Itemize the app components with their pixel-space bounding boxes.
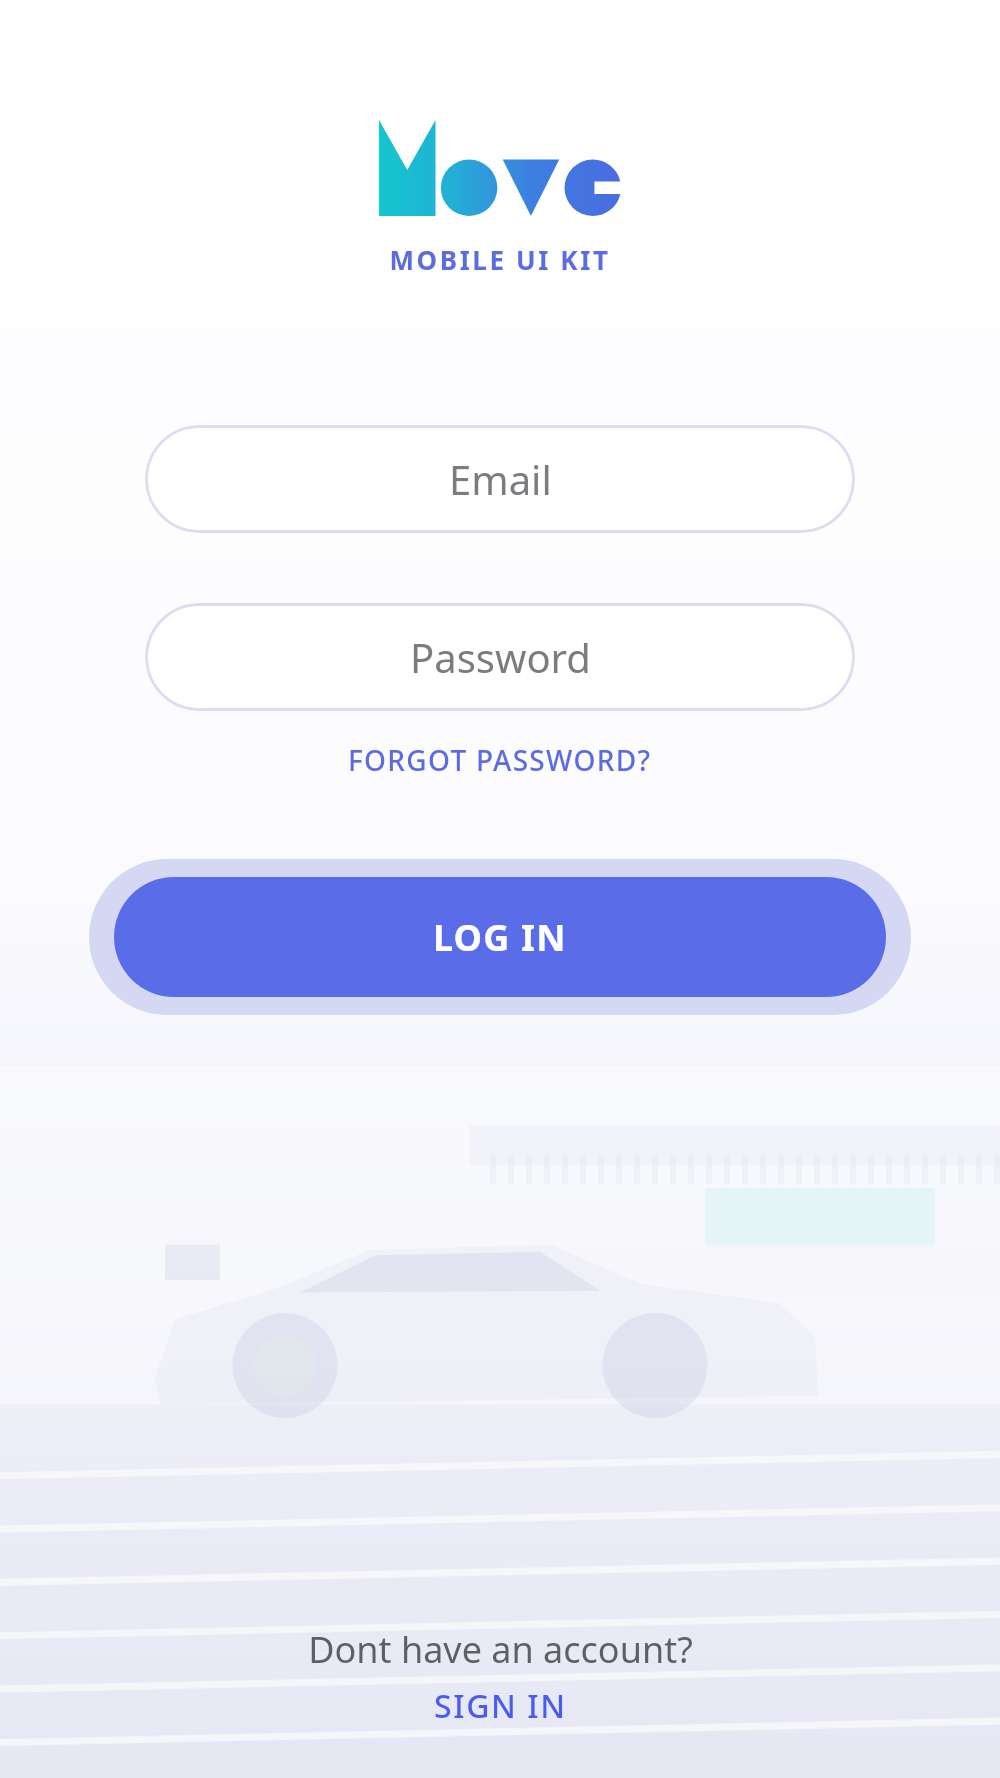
- staticText: Password: [410, 630, 591, 684]
- button[interactable]: SIGN IN: [420, 1680, 581, 1732]
- staticText: SIGN IN: [434, 1684, 567, 1728]
- staticText: Dont have an account?: [308, 1625, 693, 1674]
- button[interactable]: FORGOT PASSWORD?: [336, 735, 664, 785]
- staticText: MOBILE UI KIT: [389, 242, 611, 277]
- staticText: FORGOT PASSWORD?: [348, 741, 652, 779]
- staticText: LOG IN: [433, 913, 567, 962]
- button[interactable]: LOG IN: [89, 859, 911, 1015]
- button[interactable]: Email: [145, 425, 855, 533]
- button[interactable]: Password: [145, 603, 855, 711]
- staticText: Email: [449, 452, 552, 506]
